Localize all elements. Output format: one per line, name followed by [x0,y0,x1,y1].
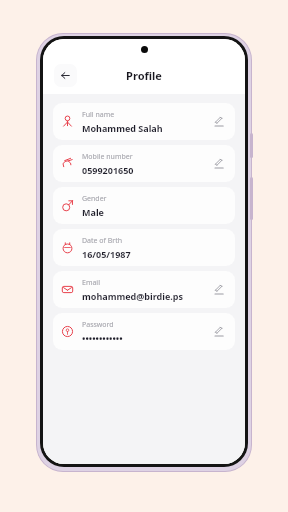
button[interactable]: Email [53,271,235,308]
button[interactable]: Edit Email [212,283,226,297]
staticText: mohammed@birdie.ps [82,290,184,302]
button[interactable]: Back [54,64,77,87]
button[interactable]: Edit Full name [212,115,226,129]
staticText: Date of Brth [82,236,123,246]
staticText: Profile [126,68,162,83]
staticText: •••••••••••• [82,332,123,344]
button[interactable]: Edit Password [212,325,226,339]
button[interactable]: Full name [53,103,235,140]
staticText: Password [82,320,114,330]
button[interactable]: Edit Mobile number [212,157,226,171]
button[interactable]: Gender [53,187,235,224]
staticText: Mobile number [82,152,133,162]
staticText: Email [82,278,100,288]
staticText: 16/05/1987 [82,248,131,260]
staticText: Full name [82,110,115,120]
button[interactable]: Date of Brth [53,229,235,266]
staticText: 0599201650 [82,164,134,176]
button[interactable]: Mobile number [53,145,235,182]
staticText: Mohammed Salah [82,122,163,134]
staticText: Gender [82,194,107,204]
button[interactable]: Password [53,313,235,350]
staticText: Male [82,206,104,218]
